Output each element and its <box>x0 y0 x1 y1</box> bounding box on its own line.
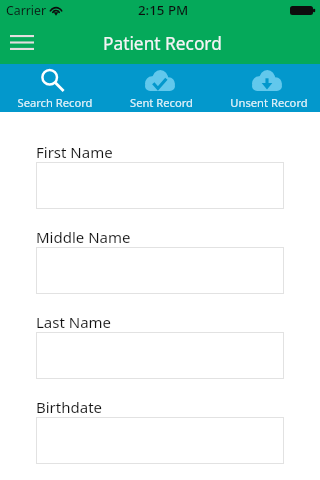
button[interactable]: Middle Name <box>36 247 284 294</box>
staticText: Birthdate <box>36 397 103 417</box>
button[interactable]: Sent Record <box>106 64 213 112</box>
staticText: Middle Name <box>36 227 131 247</box>
button[interactable]: Search Record <box>0 64 106 112</box>
button[interactable]: Birthdate <box>36 417 284 464</box>
other: Wi-Fi signal <box>49 5 63 16</box>
other: Battery full <box>290 6 315 15</box>
staticText: Last Name <box>36 312 112 332</box>
button[interactable]: Last Name <box>36 332 284 379</box>
staticText: Patient Record <box>103 32 222 56</box>
staticText: Sent Record <box>130 95 193 110</box>
button[interactable]: First Name <box>36 162 284 209</box>
staticText: Carrier <box>6 2 47 19</box>
staticText: Unsent Record <box>230 95 308 110</box>
staticText: Search Record <box>17 95 93 110</box>
staticText: First Name <box>36 142 113 162</box>
button[interactable]: Unsent Record <box>213 64 320 112</box>
staticText: 2:15 PM <box>138 1 189 19</box>
button[interactable]: Open navigation menu <box>0 23 44 61</box>
